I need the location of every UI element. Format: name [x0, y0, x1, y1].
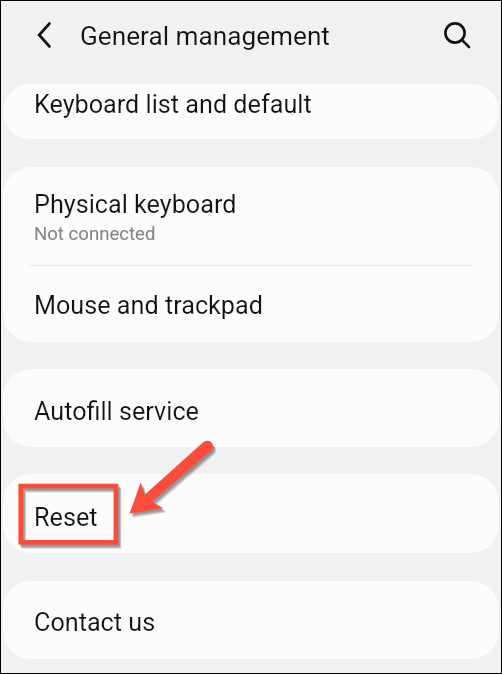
button[interactable]: Search [435, 13, 479, 57]
staticText: Reset [34, 503, 98, 533]
button[interactable]: Keyboard list and default [3, 84, 499, 139]
staticText: Not connected [34, 223, 156, 245]
staticText: Mouse and trackpad [34, 291, 263, 321]
button[interactable]: Physical keyboard [3, 167, 499, 265]
staticText: Physical keyboard [34, 190, 237, 220]
staticText: Keyboard list and default [34, 90, 312, 120]
staticText: Autofill service [34, 397, 199, 427]
staticText: Contact us [34, 608, 156, 638]
button[interactable]: Contact us [3, 581, 499, 659]
button[interactable]: Mouse and trackpad [3, 266, 499, 342]
button[interactable]: Reset [3, 474, 499, 553]
staticText: General management [80, 21, 330, 52]
button[interactable]: Autofill service [3, 369, 499, 447]
button[interactable]: Navigate up [29, 13, 59, 57]
